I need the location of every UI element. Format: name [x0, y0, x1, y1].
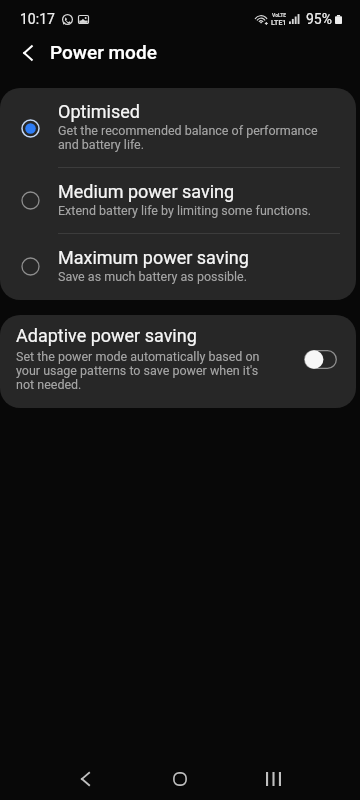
button[interactable]: Medium power saving [0, 168, 356, 233]
button[interactable]: Adaptive power saving [303, 348, 337, 370]
button[interactable]: Optimised [0, 88, 356, 167]
button[interactable]: Recent apps [233, 758, 314, 800]
button[interactable]: Maximum power saving [0, 234, 356, 300]
staticText: LTE1 [271, 19, 287, 27]
staticText: 10:17 [20, 11, 55, 27]
staticText: Set the power mode automatically based o… [16, 349, 274, 392]
staticText: Get the recommended balance of performan… [58, 123, 330, 152]
staticText: 95% [306, 11, 332, 27]
staticText: Extend battery life by limiting some fun… [58, 203, 312, 218]
staticText: Save as much battery as possible. [58, 269, 247, 284]
staticText: Medium power saving [58, 181, 235, 202]
staticText: Maximum power saving [58, 247, 249, 268]
staticText: Adaptive power saving [16, 325, 197, 346]
staticText: VoLTE [272, 12, 287, 18]
button[interactable]: Navigate up [4, 29, 52, 77]
button[interactable]: Adaptive power saving [0, 315, 356, 408]
button[interactable]: Back [45, 758, 126, 800]
staticText: Optimised [58, 101, 140, 122]
staticText: Power mode [50, 41, 157, 63]
button[interactable]: Home [139, 758, 220, 800]
